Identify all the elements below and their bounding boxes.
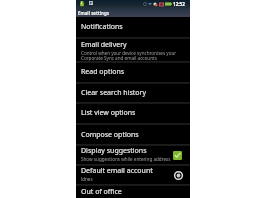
staticText: Control when your device synchronises yo… bbox=[81, 50, 177, 62]
button[interactable]: Clear search history bbox=[76, 83, 190, 103]
staticText: Display suggestions bbox=[81, 146, 147, 156]
staticText: Notifications bbox=[81, 22, 123, 32]
staticText: Read options bbox=[81, 67, 125, 77]
staticText: Show suggestions while entering address bbox=[81, 156, 171, 162]
staticText: Default email account bbox=[81, 166, 153, 176]
staticText: Out of office bbox=[81, 187, 122, 197]
staticText: 12:52 bbox=[173, 1, 185, 7]
button[interactable]: List view options bbox=[76, 103, 190, 123]
staticText: Compose options bbox=[81, 130, 139, 140]
staticText: Email settings bbox=[78, 10, 109, 16]
staticText: Email delivery bbox=[81, 40, 127, 50]
button[interactable]: Display suggestions bbox=[76, 145, 190, 165]
staticText: ldnes bbox=[81, 176, 93, 182]
button[interactable]: Email delivery bbox=[76, 38, 190, 63]
other: App notification bbox=[80, 1, 84, 7]
button[interactable]: Default email account bbox=[76, 165, 190, 185]
staticText: Clear search history bbox=[81, 88, 147, 98]
other: Notification bbox=[89, 1, 93, 5]
button[interactable]: Read options bbox=[76, 62, 190, 82]
button[interactable]: Out of office bbox=[76, 185, 190, 198]
button[interactable]: Compose options bbox=[76, 124, 190, 145]
button[interactable]: Notifications bbox=[76, 16, 190, 37]
staticText: List view options bbox=[81, 108, 136, 118]
